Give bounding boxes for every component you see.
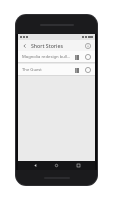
button[interactable]: Magnolia redesign bulletin bbox=[18, 51, 95, 62]
button[interactable]: Download bbox=[83, 52, 92, 61]
staticText: Short Stories bbox=[31, 42, 83, 49]
button[interactable]: Download bbox=[83, 65, 92, 74]
button[interactable]: Home bbox=[52, 161, 61, 170]
staticText: The Guest bbox=[22, 67, 71, 73]
staticText: Magnolia redesign bulletin bbox=[22, 54, 71, 60]
button[interactable]: Open book bbox=[73, 53, 81, 61]
button[interactable]: Recent apps bbox=[74, 161, 83, 170]
button[interactable]: The Guest bbox=[18, 64, 95, 75]
button[interactable]: Back bbox=[31, 161, 40, 170]
button[interactable]: Open book bbox=[73, 66, 81, 74]
button[interactable]: Information bbox=[83, 41, 92, 50]
button[interactable]: Navigate up bbox=[21, 42, 29, 50]
